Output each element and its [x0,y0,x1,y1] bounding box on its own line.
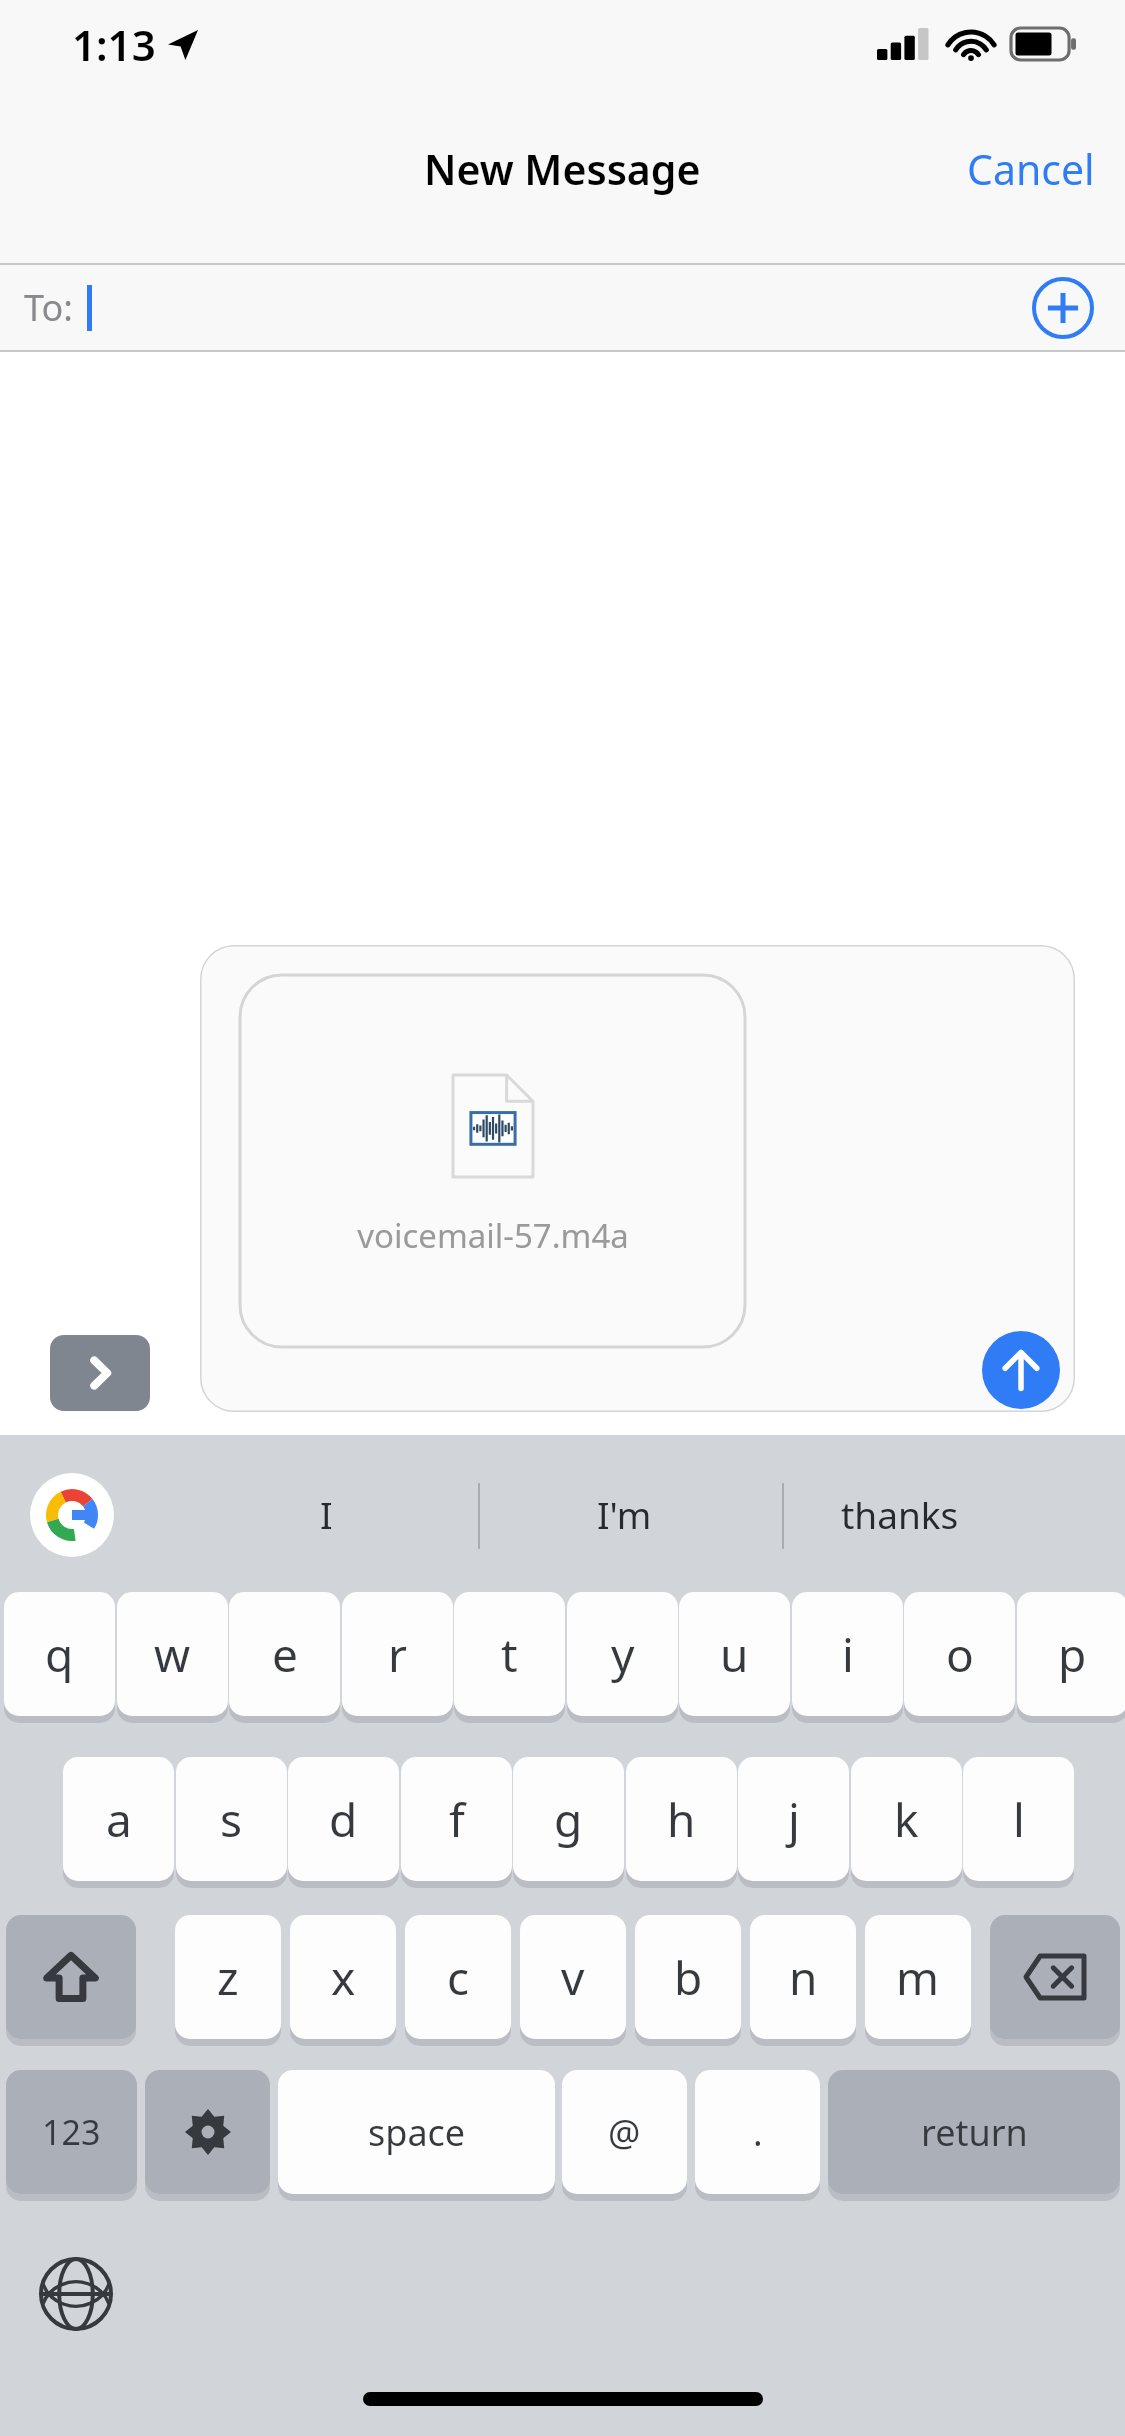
button[interactable]: thanks [785,1435,1015,1592]
button[interactable]: I'm [509,1435,739,1592]
button[interactable]: v [520,1915,626,2045]
staticText: m [896,1946,940,2009]
staticText: c [447,1946,470,2009]
staticText: l [1013,1788,1025,1851]
button[interactable]: Add contact [1027,272,1099,344]
button[interactable]: x [290,1915,396,2045]
button[interactable]: Cancel [937,125,1125,213]
button[interactable]: return [828,2070,1120,2200]
staticText: i [842,1623,854,1686]
staticText: k [894,1788,919,1851]
button[interactable]: e [229,1592,340,1722]
staticText: e [272,1623,298,1686]
staticText: r [388,1623,407,1686]
staticText: space [368,2108,466,2157]
button[interactable]: l [963,1757,1074,1887]
button[interactable]: Google [30,1473,114,1557]
button[interactable]: Backspace [990,1915,1120,2045]
button[interactable]: a [63,1757,174,1887]
button[interactable]: . [695,2070,820,2200]
button[interactable]: z [175,1915,281,2045]
button[interactable]: space [278,2070,555,2200]
button[interactable]: Shift [6,1915,136,2045]
button[interactable]: o [904,1592,1015,1722]
button[interactable]: i [792,1592,903,1722]
button[interactable]: j [738,1757,849,1887]
staticText: p [1058,1623,1087,1686]
button[interactable]: d [288,1757,399,1887]
button[interactable]: Send [982,1331,1060,1409]
staticText: New Message [424,141,701,197]
staticText: I [320,1489,333,1539]
button[interactable]: q [4,1592,115,1722]
button[interactable]: c [405,1915,511,2045]
staticText: s [220,1788,243,1851]
button[interactable]: k [851,1757,962,1887]
staticText: thanks [841,1489,959,1539]
button[interactable]: Settings [145,2070,270,2200]
staticText: I'm [597,1489,652,1539]
button[interactable]: m [865,1915,971,2045]
staticText: h [667,1788,696,1851]
button[interactable]: g [513,1757,624,1887]
staticText: Cancel [967,141,1095,197]
button[interactable]: n [750,1915,856,2045]
button[interactable]: Show more apps [50,1335,150,1411]
staticText: . [753,2108,763,2157]
button[interactable]: u [679,1592,790,1722]
staticText: @ [608,2108,641,2157]
button[interactable]: w [117,1592,228,1722]
staticText: q [45,1623,74,1686]
button[interactable]: @ [562,2070,687,2200]
button[interactable]: Change keyboard [22,2240,130,2348]
staticText: voicemail-57.m4a [357,1213,629,1258]
button[interactable]: y [567,1592,678,1722]
staticText: 1:13 [72,16,156,73]
staticText: x [331,1946,356,2009]
button[interactable]: t [454,1592,565,1722]
button[interactable]: s [176,1757,287,1887]
staticText: b [674,1946,703,2009]
staticText: t [501,1623,518,1686]
staticText: z [217,1946,239,2009]
button[interactable]: h [626,1757,737,1887]
staticText: 123 [42,2109,101,2155]
staticText: return [921,2108,1028,2157]
staticText: v [561,1946,585,2009]
button[interactable]: b [635,1915,741,2045]
staticText: y [611,1623,635,1686]
button[interactable]: f [401,1757,512,1887]
staticText: d [329,1788,358,1851]
staticText: a [106,1788,132,1851]
staticText: j [788,1788,800,1851]
staticText: u [720,1623,749,1686]
staticText: To: [24,283,73,332]
staticText: o [946,1623,974,1686]
button[interactable]: I [211,1435,441,1592]
button[interactable]: 123 [6,2070,137,2200]
staticText: f [449,1788,465,1851]
button[interactable]: voicemail-57.m4a [200,945,1075,1412]
staticText: n [789,1946,818,2009]
staticText: w [154,1623,191,1686]
button[interactable]: p [1017,1592,1125,1722]
staticText: g [554,1788,583,1851]
button[interactable]: r [342,1592,453,1722]
